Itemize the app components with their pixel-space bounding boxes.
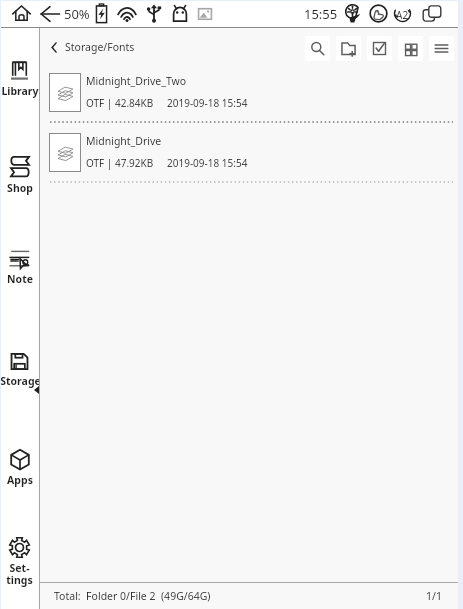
button[interactable]: Recent apps — [422, 4, 442, 23]
staticText: Midnight_Drive — [86, 134, 162, 148]
staticText: OTF | 47.92KB — [86, 156, 154, 170]
button[interactable]: Grid view — [398, 36, 423, 61]
staticText: 50% — [64, 5, 90, 23]
button[interactable]: Apps — [0, 447, 39, 489]
staticText: Storage — [0, 374, 39, 388]
staticText: Midnight_Drive_Two — [86, 74, 187, 88]
staticText: Note — [7, 272, 33, 286]
staticText: Set- tings — [6, 561, 33, 587]
button[interactable]: Set- tings — [0, 535, 39, 589]
button[interactable]: Midnight_Drive — [40, 123, 463, 181]
button[interactable]: New folder — [336, 36, 361, 61]
staticText: Shop — [7, 181, 33, 195]
staticText: Total: Folder 0/File 2 (49G/64G) — [54, 589, 211, 603]
button[interactable]: Back — [40, 6, 60, 22]
staticText: Library — [1, 84, 39, 98]
button[interactable]: Front light — [344, 4, 361, 23]
button[interactable]: Note — [0, 247, 39, 288]
staticText: 1/1 — [426, 589, 442, 603]
button[interactable]: Midnight_Drive_Two — [40, 63, 463, 121]
button[interactable]: Storage/Fonts — [46, 33, 140, 61]
button[interactable]: Home — [12, 4, 31, 23]
button[interactable]: Select — [367, 36, 392, 61]
button[interactable]: Shop — [0, 154, 39, 197]
staticText: 15:55 — [304, 5, 338, 23]
staticText: OTF | 42.84KB — [86, 96, 154, 110]
button[interactable]: Refresh mode — [393, 4, 412, 23]
staticText: Storage/Fonts — [65, 40, 135, 54]
button[interactable]: Library — [0, 59, 39, 100]
staticText: A2 — [396, 8, 409, 22]
button[interactable]: Storage — [0, 350, 39, 390]
button[interactable]: Touch — [369, 4, 388, 23]
staticText: Apps — [7, 473, 33, 487]
button[interactable]: Search — [305, 36, 330, 61]
staticText: 2019-09-18 15:54 — [167, 96, 248, 110]
staticText: 2019-09-18 15:54 — [167, 156, 248, 170]
button[interactable]: Menu — [429, 36, 454, 61]
